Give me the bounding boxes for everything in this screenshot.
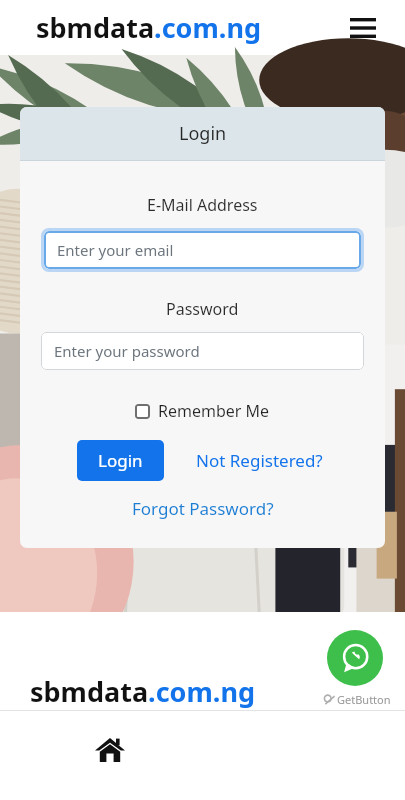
button[interactable]: Enter your password — [41, 332, 364, 370]
staticText: Not Registered? — [196, 449, 323, 472]
staticText: Enter your email — [57, 240, 174, 260]
staticText: Remember Me — [158, 400, 270, 422]
button[interactable]: Enter your email — [44, 231, 361, 269]
staticText: sbmdata.com.ng — [36, 9, 261, 46]
staticText: Login — [179, 121, 227, 146]
staticText: Forgot Password? — [132, 497, 274, 520]
button[interactable]: Chat on WhatsApp — [327, 630, 383, 686]
staticText: Enter your password — [54, 341, 200, 361]
button[interactable]: Forgot Password? — [126, 491, 280, 526]
staticText: Password — [166, 298, 239, 320]
staticText: sbmdata.com.ng — [30, 673, 255, 710]
button[interactable]: Menu — [343, 8, 383, 48]
button[interactable]: Not Registered? — [190, 443, 329, 478]
button[interactable]: Login — [77, 440, 164, 481]
staticText: GetButton — [337, 692, 391, 707]
staticText: Login — [98, 449, 143, 472]
staticText: E-Mail Address — [147, 194, 258, 216]
button[interactable]: Remember Me — [131, 396, 274, 426]
button[interactable]: Home — [83, 723, 137, 777]
